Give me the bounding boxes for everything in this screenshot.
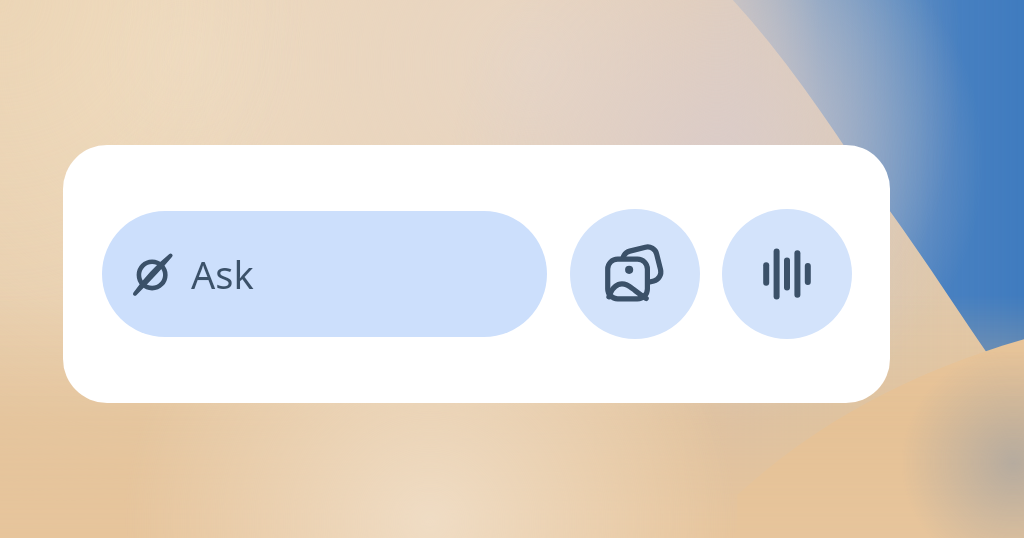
staticText: Ask — [191, 248, 254, 300]
button[interactable]: Ask — [102, 211, 547, 337]
button[interactable]: Voice input — [722, 209, 852, 339]
button[interactable]: Add photo — [570, 209, 700, 339]
